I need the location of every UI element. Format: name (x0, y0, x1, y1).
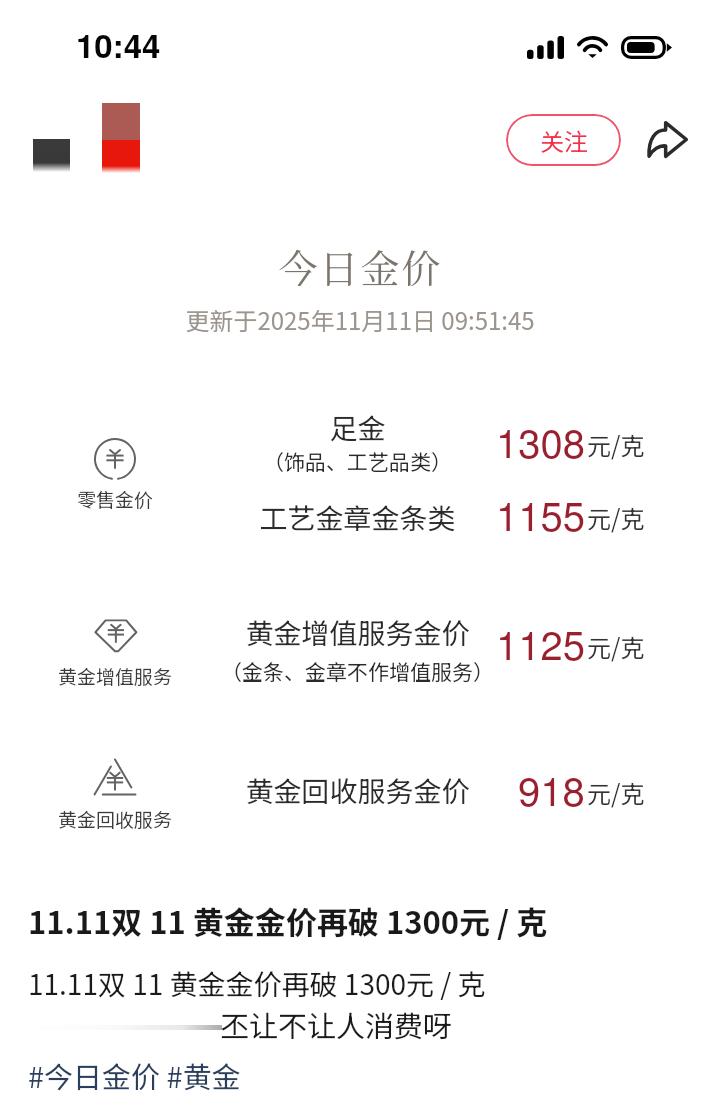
staticText: 更新于2025年11月11日 09:51:45 (185, 302, 535, 337)
staticText: 黄金增值服务 (58, 662, 173, 690)
staticText: 关注 (540, 123, 588, 158)
button[interactable]: 1308 (465, 412, 643, 469)
staticText: 零售金价 (77, 485, 154, 513)
staticText: 1155 (496, 485, 585, 542)
staticText: 黄金回收服务金价 (245, 770, 470, 811)
button[interactable]: 关注 (506, 114, 621, 166)
staticText: 黄金增值服务金价 (245, 612, 470, 653)
staticText: #今日金价 #黄金 (28, 1054, 241, 1096)
staticText: 918 (518, 760, 585, 817)
staticText: 足金 (329, 407, 386, 448)
button[interactable]: 918 (465, 760, 643, 817)
button[interactable]: 黄金增值服务 (35, 614, 195, 690)
staticText: 丕让不让人消费呀 (220, 1003, 453, 1045)
staticText: 黄金回收服务 (58, 805, 173, 833)
staticText: 1125 (496, 614, 585, 671)
staticText: 11.11双 11 黄金金价再破 1300元 / 克 (28, 963, 486, 1004)
button[interactable]: 黄金回收服务 (35, 757, 195, 833)
staticText: 元/克 (587, 427, 645, 462)
staticText: （饰品、工艺品类） (263, 446, 452, 476)
staticText: 工艺金章金条类 (259, 497, 456, 538)
staticText: 元/克 (587, 629, 645, 664)
button[interactable]: Share (637, 109, 697, 169)
staticText: 1308 (496, 412, 585, 469)
staticText: 11.11双 11 黄金金价再破 1300元 / 克 (28, 898, 548, 943)
staticText: （金条、金章不作增值服务） (221, 656, 494, 686)
staticText: 今日金价 (278, 238, 443, 294)
button[interactable]: 零售金价 (35, 437, 195, 513)
button[interactable]: 1155 (465, 485, 643, 542)
staticText: 元/克 (587, 500, 645, 535)
staticText: 元/克 (587, 775, 645, 810)
staticText: 10:44 (76, 21, 161, 68)
button[interactable]: Back (33, 139, 70, 172)
button[interactable]: 1125 (465, 614, 643, 671)
button[interactable]: Profile image (102, 103, 140, 173)
